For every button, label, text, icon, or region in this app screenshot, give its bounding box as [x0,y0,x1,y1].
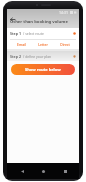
staticText: / select route [23,31,73,36]
staticText: Show route below [25,67,61,72]
staticText: Direct [60,42,70,47]
button[interactable]: Direct [54,40,76,49]
staticText: Other than booking volume [10,19,68,25]
button[interactable]: Letter [32,40,54,49]
button[interactable]: Recents [58,164,72,178]
staticText: Email [17,42,26,47]
button[interactable]: Home [36,164,50,178]
button[interactable]: Back [15,164,29,178]
button[interactable]: Email [10,40,32,49]
staticText: Letter [38,42,48,47]
button[interactable]: Show route below [11,64,75,75]
button[interactable]: Step 2 [7,51,79,61]
staticText: / define your plan [23,54,73,59]
staticText: Step 2 [10,54,21,59]
button[interactable]: Step 1 [7,28,79,39]
button[interactable]: Back [8,15,17,24]
staticText: 14:31 [59,10,68,15]
staticText: Step 1 [10,31,21,36]
